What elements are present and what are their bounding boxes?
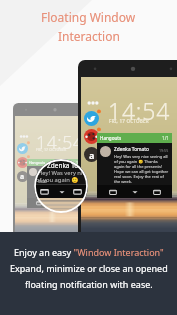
staticText: Hey! Was very nice see xyxy=(38,169,88,185)
staticText: 1/1 xyxy=(162,135,169,141)
staticText: FRI, 17 OCTOBER xyxy=(109,118,149,124)
button[interactable]: Hangouts xyxy=(27,159,84,166)
button[interactable]: Amazon xyxy=(17,171,28,182)
button[interactable]: Notification app xyxy=(84,129,99,144)
staticText: 1/1 xyxy=(76,160,82,165)
staticText: 19:55 xyxy=(75,169,82,173)
button[interactable]: Amazon xyxy=(84,147,99,162)
staticText: Hangouts xyxy=(100,135,122,141)
staticText: floating notification with ease. xyxy=(25,278,153,290)
staticText: Enjoy an easy "Window Interaction" xyxy=(14,246,164,258)
staticText: Hey! Was very nice seeing all of you aga… xyxy=(114,154,169,184)
staticText: Floating Window xyxy=(41,9,136,25)
button[interactable]: Restore window xyxy=(34,198,44,208)
staticText: 14:54 xyxy=(108,95,171,126)
staticText: a xyxy=(20,172,25,181)
button[interactable]: Close window xyxy=(150,185,163,198)
staticText: Zdenka Tomato xyxy=(47,161,88,170)
button[interactable]: Restore window xyxy=(106,185,119,198)
staticText: Hangouts xyxy=(29,160,46,165)
staticText: Zdenka Tomato xyxy=(114,146,149,153)
button[interactable]: Close window xyxy=(67,198,77,208)
button[interactable]: Minimize window xyxy=(51,198,61,208)
staticText: of you again 🙂 Thanks xyxy=(36,176,88,192)
button[interactable]: Hangouts xyxy=(97,133,172,143)
button[interactable]: Twitter xyxy=(84,111,99,126)
button[interactable]: Close window xyxy=(71,185,84,198)
button[interactable]: Restore window xyxy=(38,185,51,198)
staticText: Hey! Was very nice seeing all of you aga… xyxy=(39,174,82,194)
staticText: 19:55 xyxy=(159,148,169,153)
staticText: Interaction xyxy=(58,28,120,44)
staticText: FRI, 17 OCTOBER xyxy=(36,147,67,152)
staticText: a xyxy=(89,149,95,161)
button[interactable]: Twitter xyxy=(17,143,28,154)
staticText: Expand, minimize or close an opened xyxy=(10,262,168,274)
button[interactable]: Minimize window xyxy=(55,185,68,198)
staticText: Zdenka Tomato xyxy=(39,168,66,173)
button[interactable]: Minimize window xyxy=(128,185,141,198)
staticText: 14:54 xyxy=(36,130,84,154)
button[interactable]: Notification app xyxy=(17,157,28,168)
